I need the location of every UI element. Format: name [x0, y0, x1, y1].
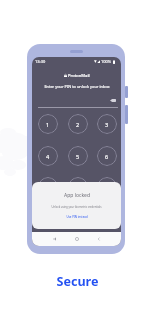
button[interactable]: 9: [97, 177, 117, 197]
staticText: Secure: [56, 273, 99, 290]
staticText: 3: [105, 121, 109, 128]
button[interactable]: Back: [94, 234, 104, 244]
staticText: App locked: [64, 192, 90, 199]
button[interactable]: 6: [97, 146, 117, 166]
button[interactable]: 5: [68, 146, 88, 166]
staticText: 13:30: [35, 59, 46, 64]
button[interactable]: 7: [38, 177, 58, 197]
staticText: 100%: [101, 59, 112, 64]
staticText: Unlock using your biometric credentials: [51, 205, 102, 209]
button[interactable]: 2: [68, 114, 88, 134]
staticText: 5: [76, 153, 80, 160]
staticText: 1: [46, 121, 50, 128]
button[interactable]: Backspace: [107, 96, 119, 105]
staticText: ProtonMail: [68, 73, 90, 79]
staticText: 2: [76, 121, 80, 128]
staticText: Use PIN instead: [66, 215, 88, 219]
button[interactable]: Recents: [50, 234, 60, 244]
staticText: 6: [105, 153, 109, 160]
button[interactable]: 1: [38, 114, 58, 134]
staticText: Enter your PIN to unlock your inbox: [44, 84, 110, 89]
button[interactable]: Home: [72, 234, 82, 244]
button[interactable]: 8: [68, 177, 88, 197]
button[interactable]: Use PIN instead: [62, 214, 92, 220]
button[interactable]: 3: [97, 114, 117, 134]
button[interactable]: 4: [38, 146, 58, 166]
staticText: 4: [46, 153, 50, 160]
